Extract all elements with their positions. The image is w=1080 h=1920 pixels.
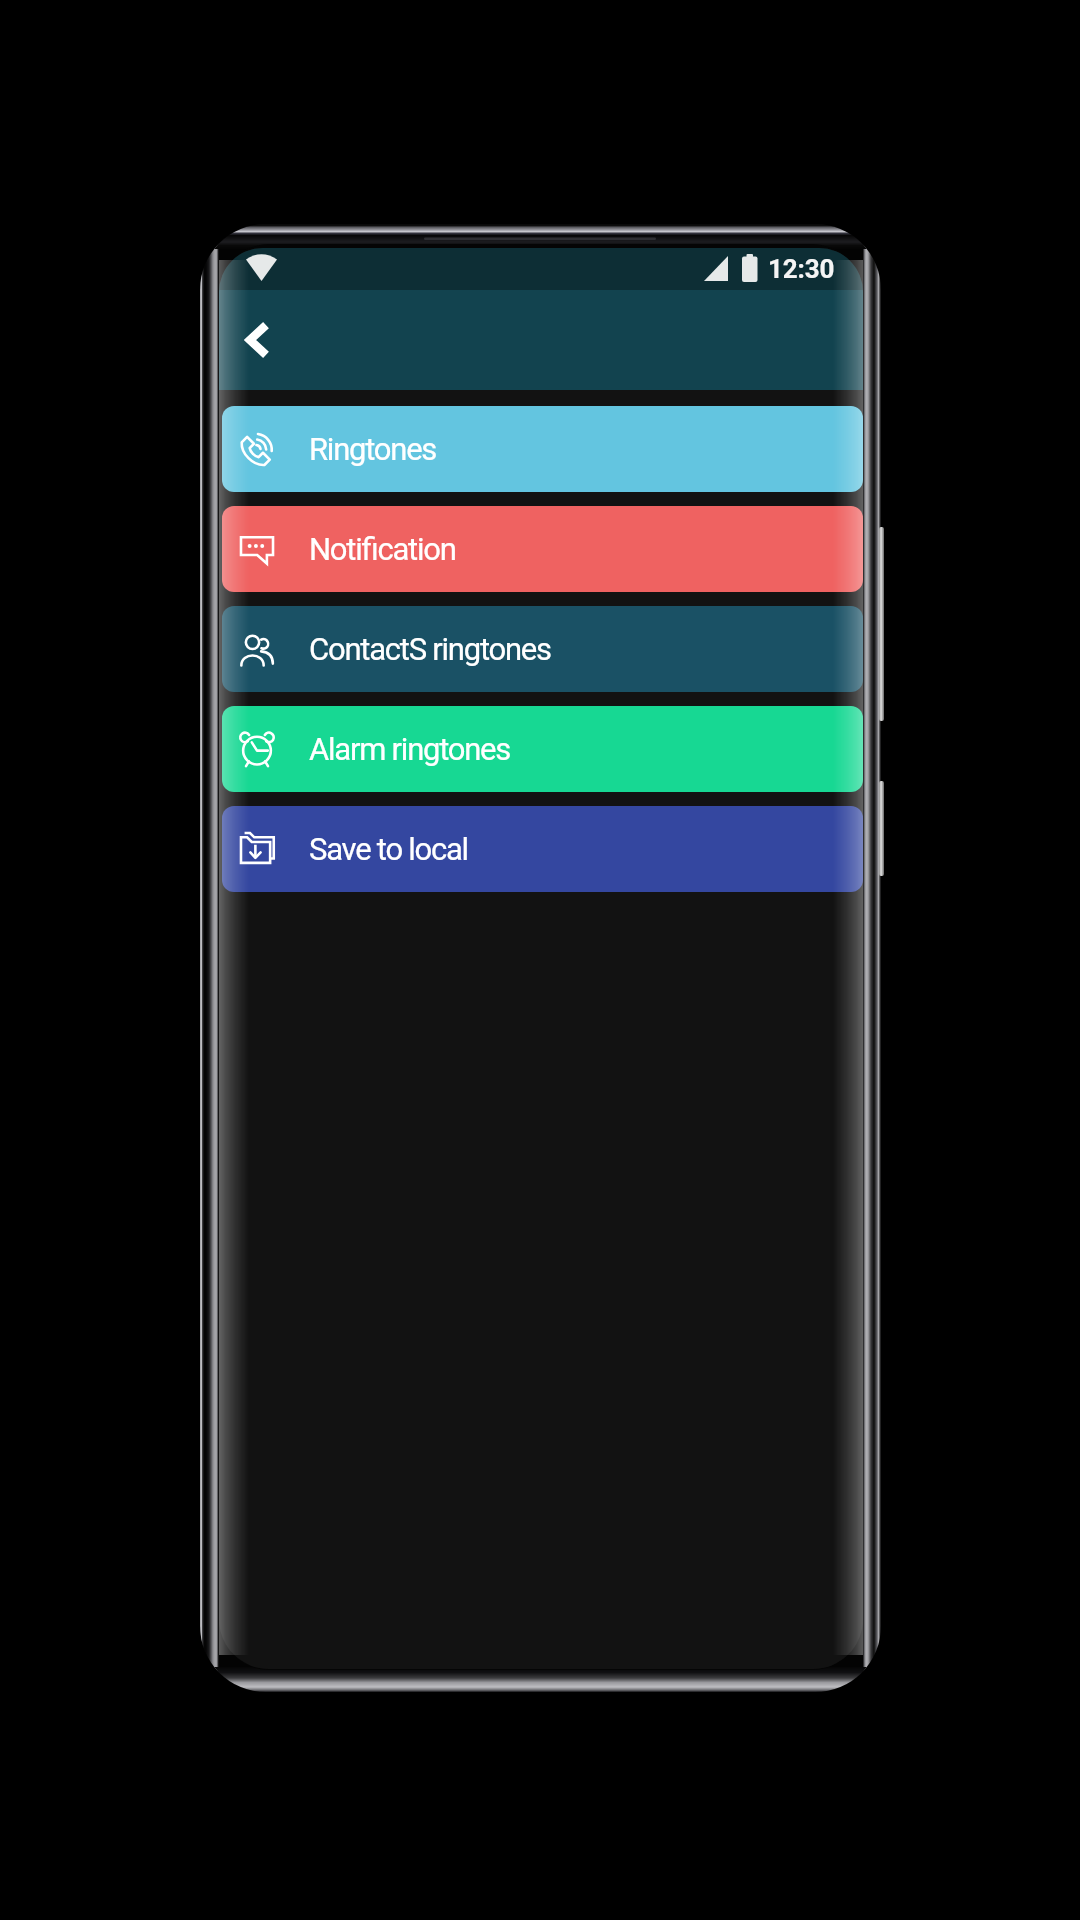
- button[interactable]: Alarm ringtones: [222, 706, 863, 792]
- button[interactable]: Ringtones: [222, 406, 863, 492]
- staticText: ContactS ringtones: [309, 631, 551, 667]
- button[interactable]: Back: [227, 309, 289, 371]
- staticText: 12:30: [768, 254, 835, 284]
- staticText: Alarm ringtones: [309, 731, 511, 767]
- button[interactable]: Save to local: [222, 806, 863, 892]
- button[interactable]: Notification: [222, 506, 863, 592]
- staticText: Ringtones: [309, 431, 437, 467]
- button[interactable]: ContactS ringtones: [222, 606, 863, 692]
- staticText: Save to local: [309, 831, 468, 867]
- staticText: Notification: [309, 531, 456, 567]
